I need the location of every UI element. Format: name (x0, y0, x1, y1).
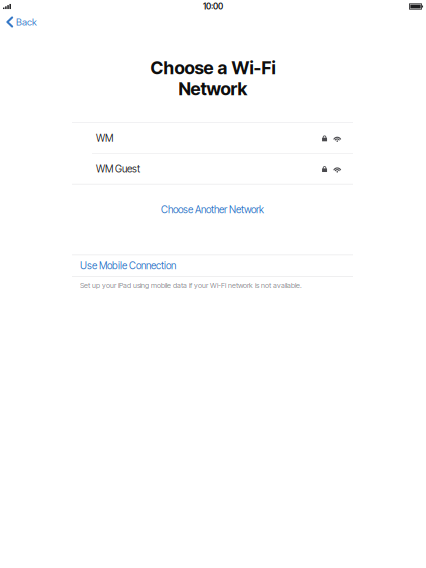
button[interactable]: Back (0, 13, 45, 31)
staticText: WM (96, 132, 113, 144)
staticText: WM Guest (96, 163, 140, 175)
button[interactable]: Choose Another Network (72, 184, 353, 234)
staticText: Set up your iPad using mobile data if yo… (80, 281, 302, 290)
staticText: Choose Another Network (161, 203, 264, 216)
staticText: Use Mobile Connection (80, 260, 176, 272)
staticText: Back (16, 16, 37, 28)
button[interactable]: Use Mobile Connection (72, 255, 353, 276)
button[interactable]: WM (72, 123, 353, 153)
staticText: 10:00 (203, 1, 223, 11)
button[interactable]: WM Guest (72, 154, 353, 184)
staticText: Choose a Wi-Fi (150, 57, 275, 78)
staticText: Network (178, 78, 247, 99)
